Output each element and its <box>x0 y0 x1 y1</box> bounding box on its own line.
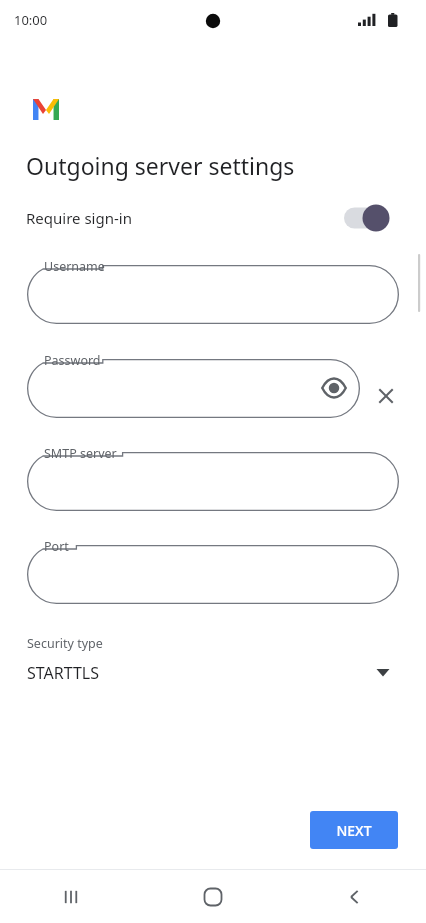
staticText: NEXT <box>336 821 372 840</box>
button[interactable]: Security type <box>14 630 400 692</box>
staticText: Require sign-in <box>26 208 132 228</box>
staticText: STARTTLS <box>27 662 100 684</box>
button[interactable]: Show password <box>320 374 348 402</box>
button[interactable]: NEXT <box>310 811 398 849</box>
staticText: Password <box>44 352 101 369</box>
button[interactable]: Password <box>27 359 360 418</box>
staticText: Security type <box>27 635 103 652</box>
button[interactable]: Port <box>27 545 399 604</box>
button[interactable]: Recent apps <box>0 870 142 923</box>
button[interactable]: Require sign-in toggle <box>344 203 396 233</box>
staticText: Outgoing server settings <box>26 150 295 181</box>
staticText: 10:00 <box>14 11 48 29</box>
button[interactable]: Username <box>27 265 399 324</box>
staticText: SMTP server <box>44 445 117 462</box>
staticText: Username <box>44 258 105 275</box>
button[interactable]: Back <box>284 870 426 923</box>
button[interactable]: Clear password <box>372 382 400 410</box>
staticText: Port <box>44 538 69 555</box>
button[interactable]: Require sign-in <box>0 196 426 240</box>
button[interactable]: Home <box>142 870 284 923</box>
button[interactable]: SMTP server <box>27 452 399 511</box>
